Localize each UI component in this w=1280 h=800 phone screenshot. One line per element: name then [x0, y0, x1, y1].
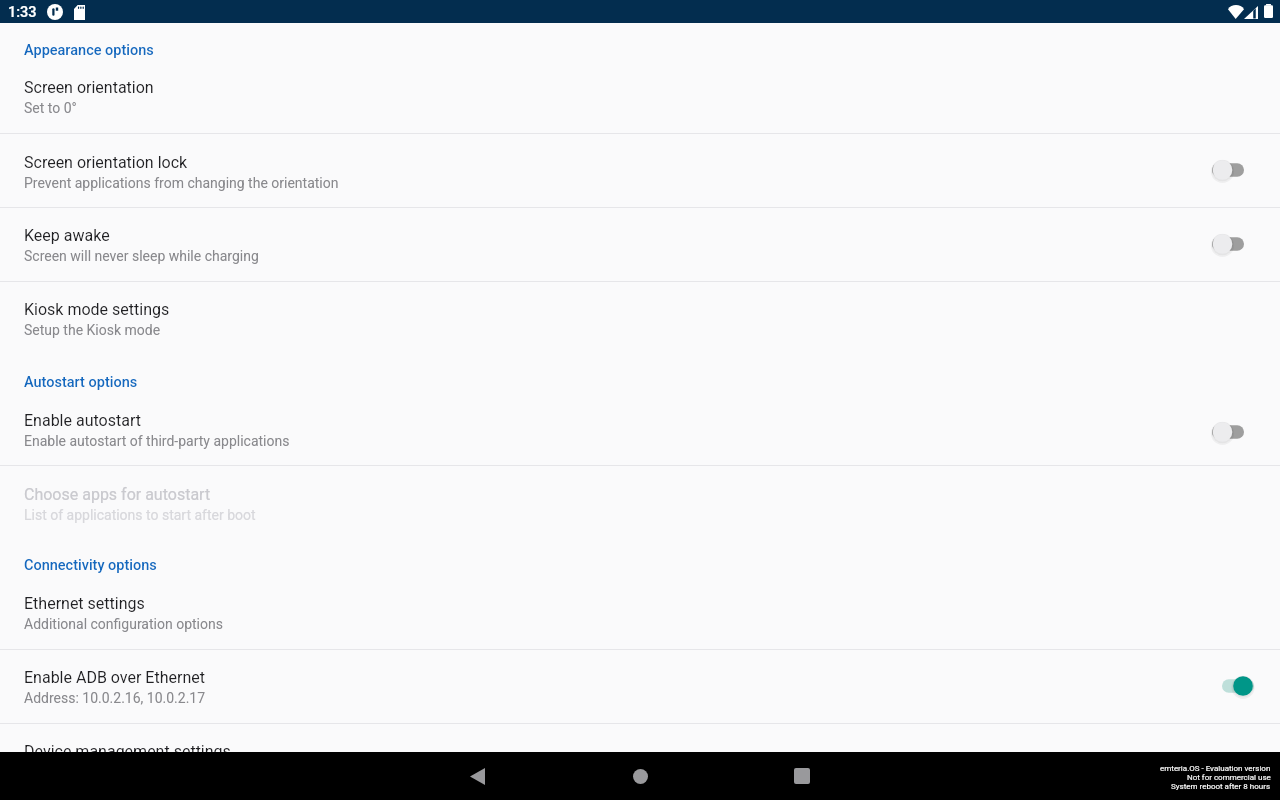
staticText: Set to 0°	[24, 100, 77, 116]
button[interactable]: Switch, off	[1200, 220, 1260, 268]
staticText: Connectivity options	[24, 557, 157, 574]
staticText: 1:33	[8, 4, 37, 21]
staticText: Not for commercial use	[1187, 773, 1271, 782]
other: Screen recording	[47, 4, 63, 20]
other: Battery	[1264, 4, 1273, 18]
button[interactable]: Keep awake	[0, 208, 1280, 281]
staticText: Device management settings	[24, 742, 231, 761]
staticText: Prevent applications from changing the o…	[24, 175, 339, 191]
button: Choose apps for autostart	[0, 466, 1280, 540]
button[interactable]: Recent apps	[778, 752, 826, 800]
other: SD card	[74, 5, 85, 20]
staticText: Ethernet settings	[24, 594, 145, 613]
button[interactable]: Switch, off	[1200, 408, 1260, 456]
button[interactable]: Screen orientation lock	[0, 134, 1280, 207]
button[interactable]: Device management settings	[0, 724, 1280, 752]
staticText: emteria.OS - Evaluation version	[1160, 764, 1271, 773]
staticText: Enable autostart	[24, 411, 141, 430]
staticText: Appearance options	[24, 42, 154, 59]
staticText: System reboot after 8 hours	[1171, 782, 1271, 791]
staticText: Enable autostart of third-party applicat…	[24, 433, 290, 449]
staticText: Keep awake	[24, 226, 110, 245]
staticText: List of applications to start after boot	[24, 507, 256, 523]
button[interactable]: Home	[616, 752, 664, 800]
other: Wi-Fi	[1228, 5, 1244, 19]
button[interactable]: Screen orientation	[0, 23, 1280, 133]
staticText: Additional configuration options	[24, 616, 223, 632]
staticText: Choose apps for autostart	[24, 485, 211, 504]
button[interactable]: Back	[453, 752, 501, 800]
staticText: Autostart options	[24, 374, 138, 391]
button[interactable]: Enable ADB over Ethernet	[0, 650, 1280, 723]
staticText: Setup the Kiosk mode	[24, 322, 161, 338]
staticText: Enable ADB over Ethernet	[24, 668, 205, 687]
button[interactable]: Enable autostart	[0, 399, 1280, 465]
button[interactable]: Kiosk mode settings	[0, 282, 1280, 356]
other: Mobile signal	[1244, 6, 1258, 19]
button[interactable]: Ethernet settings	[0, 582, 1280, 649]
staticText: Address: 10.0.2.16, 10.0.2.17	[24, 690, 206, 706]
staticText: Screen will never sleep while charging	[24, 248, 259, 264]
button[interactable]: Switch, off	[1200, 146, 1260, 194]
staticText: Screen orientation lock	[24, 153, 188, 172]
staticText: Screen orientation	[24, 78, 154, 97]
staticText: Kiosk mode settings	[24, 300, 170, 319]
button[interactable]: Switch, on	[1200, 662, 1260, 710]
